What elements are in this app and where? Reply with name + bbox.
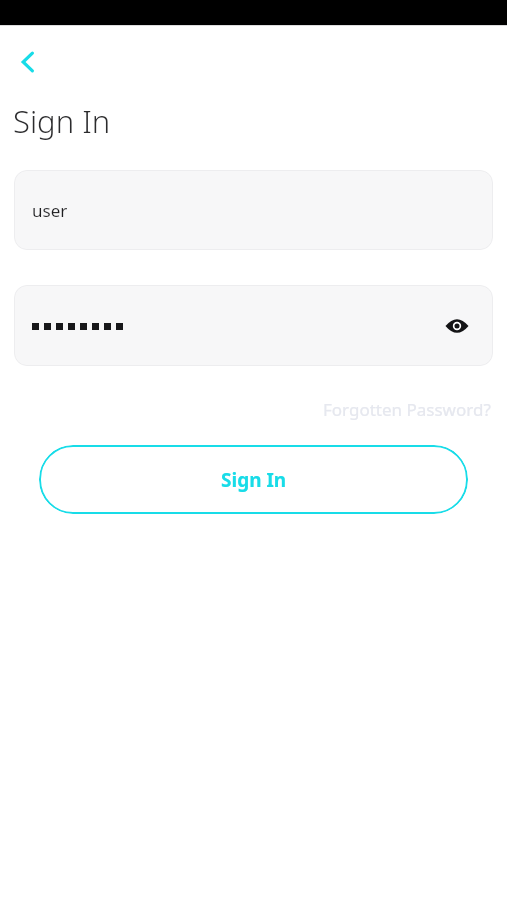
button[interactable]: Forgotten Password?: [321, 394, 493, 425]
button[interactable]: Show password: [14, 285, 493, 366]
button[interactable]: Show password: [435, 304, 479, 348]
button[interactable]: Back: [6, 40, 50, 84]
staticText: Forgotten Password?: [323, 398, 491, 421]
staticText: Sign In: [221, 467, 287, 493]
button[interactable]: Sign In: [39, 445, 468, 514]
staticText: Sign In: [13, 100, 111, 142]
staticText: user: [32, 199, 68, 222]
button[interactable]: user: [14, 170, 493, 250]
